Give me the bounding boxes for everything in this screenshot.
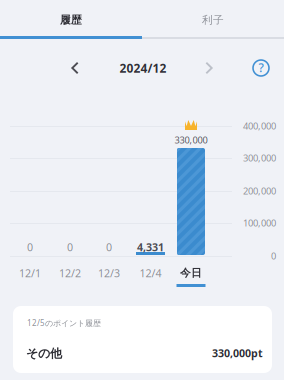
staticText: 12/1 [19, 266, 41, 280]
staticText: 330,000 [174, 134, 207, 146]
staticText: 12/4 [139, 266, 161, 280]
staticText: 100,000 [243, 217, 276, 229]
staticText: 200,000 [243, 185, 276, 197]
staticText: 利子 [202, 13, 224, 26]
staticText: 300,000 [243, 152, 276, 164]
staticText: 履歴 [60, 13, 82, 26]
staticText: 0 [106, 240, 112, 254]
staticText: ? [258, 59, 263, 75]
staticText: 0 [67, 240, 73, 254]
staticText: 12/3 [98, 266, 120, 280]
button[interactable]: 履歴 [0, 0, 142, 40]
button[interactable]: Next month [195, 54, 223, 82]
staticText: 4,331 [137, 240, 164, 254]
button[interactable]: 利子 [142, 0, 284, 40]
staticText: 12/5のポイント履歴 [27, 318, 101, 328]
staticText: 12/2 [59, 266, 81, 280]
staticText: 2024/12 [119, 60, 166, 76]
staticText: 今日 [180, 266, 202, 279]
button[interactable]: 12/5のポイント履歴 [13, 306, 272, 373]
staticText: その他 [26, 346, 62, 361]
staticText: 0 [27, 240, 33, 254]
button[interactable]: Help [253, 60, 269, 76]
staticText: 0 [271, 250, 276, 262]
staticText: 400,000 [243, 120, 276, 132]
staticText: 330,000pt [212, 346, 263, 360]
button[interactable]: Previous month [61, 54, 89, 82]
